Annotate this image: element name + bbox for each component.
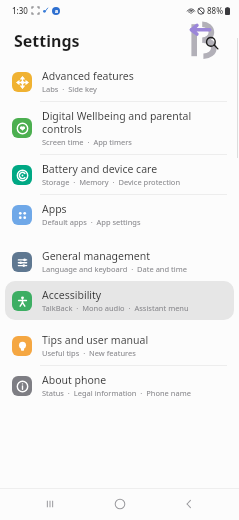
button[interactable]: Tips and user manual	[0, 326, 239, 365]
button[interactable]: Accessibility	[5, 281, 234, 320]
staticText: 1:30	[12, 5, 28, 16]
staticText: Accessibility	[42, 288, 102, 302]
button[interactable]: Digital Wellbeing and parental controls	[0, 102, 239, 154]
staticText: TalkBack · Mono audio · Assistant menu	[42, 303, 189, 313]
staticText: General management	[42, 249, 150, 263]
staticText: Status · Legal information · Phone name	[42, 388, 191, 398]
staticText: Advanced features	[42, 69, 134, 83]
staticText: a	[55, 8, 58, 15]
staticText: Battery and device care	[42, 162, 158, 176]
button[interactable]: Apps	[0, 195, 239, 234]
button[interactable]: About phone	[0, 366, 239, 405]
button[interactable]: Search	[201, 32, 223, 54]
staticText: Tips and user manual	[42, 333, 149, 347]
button[interactable]: General management	[0, 242, 239, 281]
button[interactable]: Advanced features	[0, 62, 239, 101]
button[interactable]: Home	[100, 488, 140, 520]
button[interactable]: Battery and device care	[0, 155, 239, 194]
staticText: Settings	[14, 30, 80, 52]
staticText: About phone	[42, 373, 107, 387]
staticText: Language and keyboard · Date and time	[42, 264, 187, 274]
staticText: 88%	[207, 5, 223, 16]
staticText: Screen time · App timers	[42, 137, 132, 147]
staticText: Useful tips · New features	[42, 348, 136, 358]
button[interactable]: Recents	[30, 488, 70, 520]
button[interactable]: Back	[169, 488, 209, 520]
staticText: Labs · Side key	[42, 84, 97, 94]
staticText: Storage · Memory · Device protection	[42, 177, 181, 187]
staticText: Default apps · App settings	[42, 217, 141, 227]
staticText: Apps	[42, 202, 67, 216]
staticText: Digital Wellbeing and parental controls	[42, 109, 229, 136]
